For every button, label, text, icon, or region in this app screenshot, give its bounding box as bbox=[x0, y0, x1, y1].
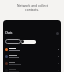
button[interactable] bbox=[3, 67, 61, 72]
button[interactable] bbox=[21, 40, 36, 44]
staticText: contacts. bbox=[25, 7, 39, 11]
button[interactable] bbox=[3, 53, 61, 60]
button[interactable]: Profile bbox=[56, 32, 59, 35]
button[interactable] bbox=[3, 46, 61, 53]
button[interactable] bbox=[3, 60, 61, 67]
button[interactable]: Email address bbox=[5, 39, 21, 44]
staticText: Chats bbox=[5, 31, 13, 35]
staticText: Network and collect bbox=[17, 3, 48, 7]
